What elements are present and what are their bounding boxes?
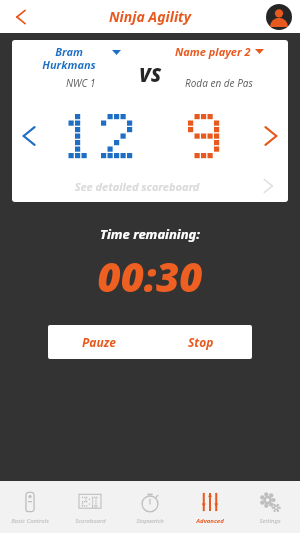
button[interactable]: Previous: [12, 102, 44, 170]
staticText: Stop: [188, 334, 214, 350]
staticText: NWC 1: [66, 76, 96, 90]
button[interactable]: Stopwatch: [120, 481, 180, 533]
button[interactable]: Next: [256, 102, 288, 170]
button[interactable]: See detailed scoreboard: [12, 170, 288, 202]
staticText: Name player 2: [175, 44, 251, 59]
staticText: Scoreboard: [75, 517, 106, 525]
staticText: Time remaining:: [0, 225, 300, 243]
staticText: Basic Controls: [11, 517, 49, 525]
staticText: Advanced: [196, 517, 224, 525]
button[interactable]: Advanced: [180, 481, 240, 533]
staticText: Roda en de Pas: [185, 76, 253, 90]
staticText: Stopwatch: [136, 517, 164, 525]
button[interactable]: Basic Controls: [0, 481, 60, 533]
staticText: Bram Hurkmans: [42, 44, 96, 72]
staticText: 00:30: [0, 249, 300, 303]
button[interactable]: Pauze: [48, 325, 150, 359]
button[interactable]: Stop: [150, 325, 252, 359]
button[interactable]: Back: [0, 0, 40, 33]
button[interactable]: Scoreboard: [60, 481, 120, 533]
staticText: See detailed scoreboard: [12, 179, 262, 194]
staticText: Settings: [259, 517, 281, 525]
button[interactable]: Bram Hurkmans: [12, 40, 150, 102]
button[interactable]: Profile: [266, 4, 292, 30]
staticText: Pauze: [82, 334, 116, 350]
button[interactable]: Settings: [240, 481, 300, 533]
staticText: VS: [139, 62, 162, 88]
button[interactable]: Name player 2: [150, 40, 288, 102]
staticText: Ninja Agility: [109, 7, 192, 26]
